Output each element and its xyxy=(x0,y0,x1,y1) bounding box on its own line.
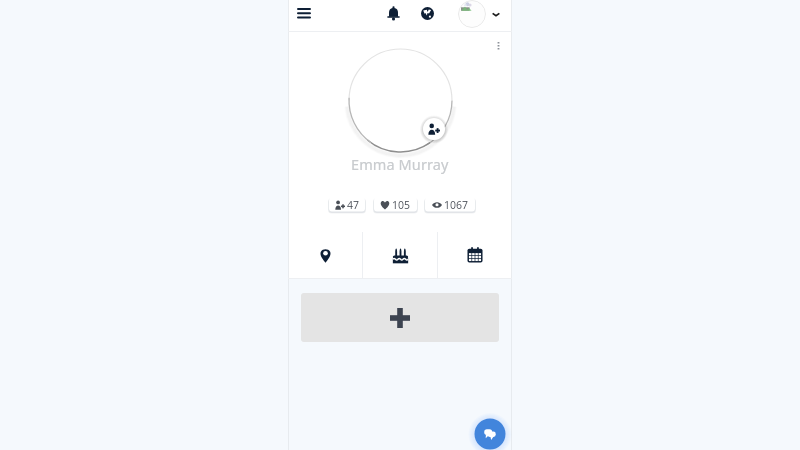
button[interactable]: More options xyxy=(490,37,506,53)
staticText: 105 xyxy=(392,198,411,212)
button[interactable]: Add friend xyxy=(419,114,449,144)
staticText: Emma Murray xyxy=(351,154,449,174)
button[interactable]: Messages xyxy=(468,412,512,450)
button[interactable]: Add xyxy=(301,293,499,342)
button[interactable]: Location xyxy=(288,232,362,278)
button[interactable]: Birthday xyxy=(363,232,437,278)
button[interactable]: Menu xyxy=(292,1,316,25)
staticText: 1067 xyxy=(444,198,469,212)
button[interactable]: Account xyxy=(458,0,500,28)
staticText: 47 xyxy=(347,198,360,212)
button[interactable]: 1067 xyxy=(422,194,478,215)
button[interactable]: Notifications xyxy=(381,1,405,25)
button[interactable]: Language xyxy=(415,1,439,25)
button[interactable]: 47 xyxy=(326,194,368,215)
button[interactable]: 105 xyxy=(371,194,420,215)
button[interactable]: Calendar xyxy=(438,232,512,278)
